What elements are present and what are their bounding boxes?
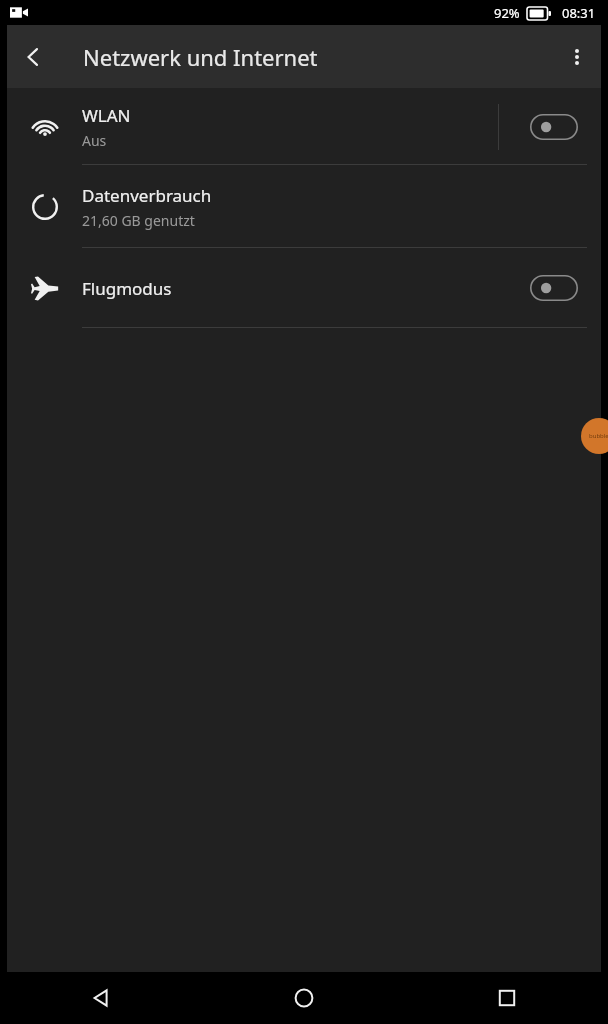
staticText: 21,60 GB genutzt — [82, 211, 195, 230]
staticText: 08:31 — [562, 4, 596, 22]
button[interactable]: WLAN toggle — [523, 104, 585, 150]
button[interactable]: Flugmodus toggle — [523, 265, 585, 311]
staticText: Aus — [82, 131, 107, 150]
staticText: Flugmodus — [82, 277, 172, 300]
button[interactable]: More options — [553, 33, 601, 81]
button[interactable]: WLAN — [7, 88, 601, 165]
button[interactable]: Back — [0, 972, 202, 1024]
staticText: bubble — [589, 432, 608, 440]
button[interactable]: Recent apps — [405, 972, 608, 1024]
button[interactable]: Flugmodus — [7, 248, 601, 328]
staticText: Datenverbrauch — [82, 184, 212, 207]
button[interactable]: Home — [202, 972, 405, 1024]
button[interactable]: Assistant bubble — [581, 418, 608, 454]
staticText: Netzwerk und Internet — [83, 42, 318, 72]
staticText: WLAN — [82, 104, 131, 127]
staticText: 92% — [494, 4, 520, 22]
button[interactable]: Back — [7, 31, 59, 83]
button[interactable]: Datenverbrauch — [7, 165, 601, 248]
